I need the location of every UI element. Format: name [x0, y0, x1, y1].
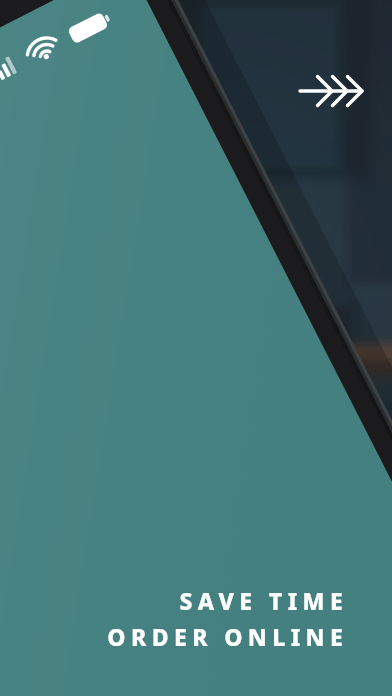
button[interactable]: Next	[300, 0, 392, 58]
button[interactable]	[0, 0, 392, 696]
